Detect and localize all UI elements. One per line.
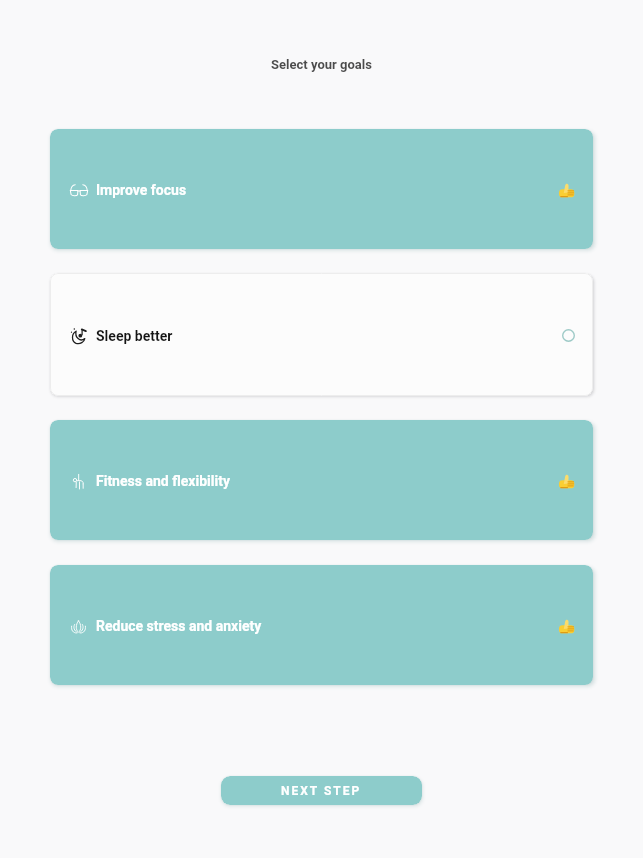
- other: Not selected: [562, 329, 575, 342]
- other: Selected: [558, 182, 575, 199]
- staticText: Fitness and flexibility: [96, 473, 230, 489]
- staticText: Improve focus: [96, 182, 187, 198]
- other: Fitness: [71, 473, 87, 490]
- other: Selected: [558, 473, 575, 490]
- staticText: Reduce stress and anxiety: [96, 618, 262, 634]
- button[interactable]: Calm: [50, 565, 593, 685]
- other: Focus: [70, 184, 88, 197]
- other: Selected: [558, 618, 575, 635]
- staticText: Sleep better: [96, 328, 173, 344]
- staticText: NEXT STEP: [281, 784, 362, 798]
- button[interactable]: Fitness: [50, 420, 593, 540]
- button[interactable]: NEXT STEP: [221, 776, 422, 805]
- staticText: Select your goals: [0, 57, 643, 72]
- button[interactable]: Sleep: [50, 273, 593, 396]
- other: Calm: [71, 620, 86, 634]
- button[interactable]: Focus: [50, 129, 593, 249]
- other: Sleep: [71, 328, 86, 344]
